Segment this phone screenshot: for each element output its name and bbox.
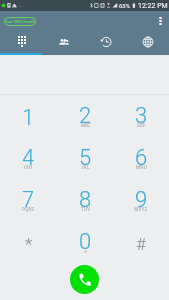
staticText: 2 — [79, 103, 92, 129]
button[interactable]: 2 — [57, 95, 113, 137]
button[interactable]: 6 — [113, 137, 169, 179]
button[interactable]: 7 — [0, 179, 57, 221]
button[interactable]: Web — [127, 31, 169, 53]
staticText: Dual SIM standby — [4, 19, 36, 24]
staticText: 9 — [135, 187, 148, 213]
button[interactable]: 0 — [57, 221, 113, 263]
button[interactable]: * — [0, 221, 57, 263]
button[interactable]: Call — [70, 265, 99, 294]
staticText: # — [136, 234, 146, 254]
staticText: 4 — [22, 145, 35, 171]
staticText: JKL — [81, 165, 90, 170]
staticText: 5 — [79, 145, 92, 171]
staticText: TUV — [81, 207, 91, 212]
button[interactable]: Recents — [85, 31, 127, 53]
staticText: 8 — [79, 187, 92, 213]
staticText: 6 — [135, 145, 148, 171]
staticText: ABC — [81, 123, 91, 128]
button[interactable]: 9 — [113, 179, 169, 221]
staticText: * — [25, 234, 33, 254]
button[interactable]: Keypad — [0, 31, 43, 53]
staticText: 7 — [22, 187, 35, 213]
button[interactable]: More options — [154, 11, 167, 31]
staticText: DEF — [137, 123, 146, 128]
staticText: 63% — [119, 2, 131, 9]
button[interactable]: 1 — [0, 95, 57, 137]
staticText: MNO — [136, 165, 148, 170]
button[interactable]: # — [113, 221, 169, 263]
staticText: + — [84, 249, 87, 254]
staticText: 0 — [79, 229, 92, 255]
button[interactable]: 5 — [57, 137, 113, 179]
staticText: GHI — [24, 165, 33, 170]
staticText: 12:22 PM — [138, 2, 168, 10]
staticText: 3 — [135, 103, 148, 129]
button[interactable]: Contacts — [43, 31, 85, 53]
button[interactable]: 3 — [113, 95, 169, 137]
button[interactable]: 4 — [0, 137, 57, 179]
button[interactable]: Dual SIM standby — [4, 17, 36, 26]
staticText: PQRS — [22, 207, 35, 212]
staticText: 1 — [22, 105, 35, 131]
button[interactable]: 8 — [57, 179, 113, 221]
staticText: WXYZ — [134, 207, 148, 212]
